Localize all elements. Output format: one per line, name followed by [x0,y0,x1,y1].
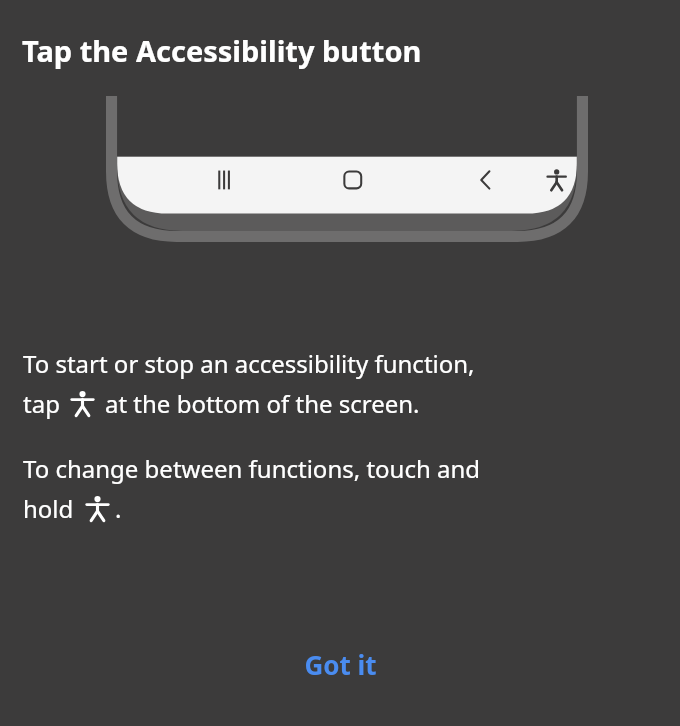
staticText: hold [23,492,74,525]
staticText: To start or stop an accessibility functi… [23,347,475,380]
staticText: . [115,492,122,525]
other: Accessibility button icon [69,390,96,417]
staticText: To change between functions, touch and [23,452,481,485]
staticText: Tap the Accessibility button [22,31,422,70]
staticText: tap [23,387,60,420]
other: Accessibility button icon [84,495,111,522]
staticText: at the bottom of the screen. [105,387,420,420]
button[interactable]: Got it [276,635,405,694]
staticText: Got it [304,647,377,682]
